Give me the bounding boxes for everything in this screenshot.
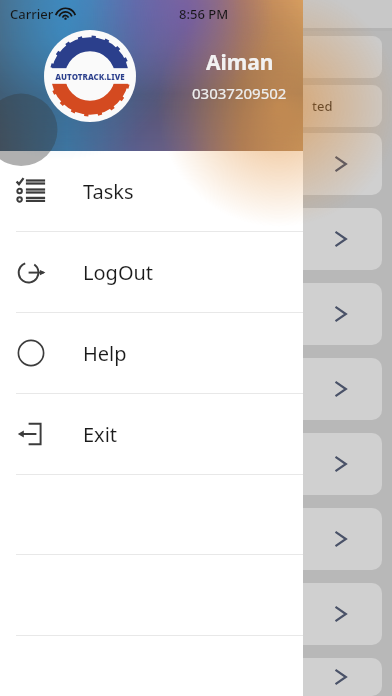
- staticText: ted: [312, 97, 333, 115]
- staticText: Tasks: [83, 178, 134, 205]
- button[interactable]: Exit: [0, 394, 303, 474]
- staticText: Exit: [83, 421, 118, 448]
- staticText: Aiman: [206, 48, 274, 77]
- staticText: 03037209502: [192, 83, 287, 103]
- other: Exit: [16, 419, 46, 449]
- button[interactable]: [10, 433, 382, 495]
- button[interactable]: LogOut: [0, 232, 303, 312]
- button[interactable]: [10, 583, 382, 645]
- button[interactable]: [10, 358, 382, 420]
- button[interactable]: Tasks: [0, 151, 303, 231]
- staticText: AUTOTRACK.LIVE: [55, 71, 125, 82]
- staticText: Carrier: [10, 5, 54, 23]
- staticText: LogOut: [83, 259, 154, 286]
- other: Help: [16, 338, 46, 368]
- button[interactable]: Help: [0, 313, 303, 393]
- other: LogOut: [16, 257, 46, 287]
- button[interactable]: [10, 133, 382, 195]
- other: Tasks: [16, 176, 46, 206]
- button[interactable]: [10, 658, 382, 696]
- button[interactable]: [10, 208, 382, 270]
- staticText: 8:56 PM: [179, 5, 229, 23]
- button[interactable]: [10, 508, 382, 570]
- staticText: Help: [83, 340, 127, 367]
- button[interactable]: [10, 283, 382, 345]
